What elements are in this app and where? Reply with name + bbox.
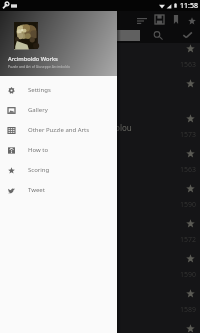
button[interactable]: Other Puzzle and Arts (0, 120, 117, 140)
staticText: Puzzle and Art of Giuseppe Arcimboldo (8, 64, 70, 69)
button[interactable]: The Jurist (0, 323, 200, 333)
staticText: 1563 (180, 165, 197, 175)
staticText: 1572 (180, 235, 197, 245)
button[interactable]: Spring (0, 43, 200, 78)
staticText: Arcimboldo Works (8, 55, 58, 63)
button[interactable]: Winter (0, 148, 200, 183)
button[interactable]: Tweet (0, 180, 117, 200)
button[interactable]: Gallery (0, 100, 117, 120)
button[interactable]: Search (149, 27, 167, 43)
button[interactable]: The Librarian (0, 218, 200, 253)
button[interactable]: Flora (0, 288, 200, 323)
staticText: 1590 (180, 200, 197, 210)
button[interactable]: Done (178, 27, 197, 43)
staticText: Spring (9, 52, 34, 63)
staticText: 11:58 (180, 1, 198, 11)
staticText: Summer (9, 87, 42, 98)
button[interactable]: How to (0, 140, 117, 160)
button[interactable]: Favorite (184, 15, 200, 26)
button[interactable]: Settings (0, 80, 117, 100)
button[interactable]: Search field (105, 30, 140, 41)
button[interactable]: Bookmark (168, 13, 183, 26)
staticText: Four Seasons in One Head (9, 192, 108, 203)
button[interactable]: Four Seasons in One Head (0, 183, 200, 218)
button[interactable]: Summer (0, 78, 200, 113)
staticText: Settings (28, 86, 51, 94)
staticText: 1563 (180, 60, 197, 70)
button[interactable]: Scoring (0, 160, 117, 180)
staticText: 1589 (180, 305, 197, 315)
staticText: How to (28, 146, 49, 154)
staticText: Tweet (28, 186, 45, 194)
button[interactable]: Sort (132, 15, 152, 26)
staticText: 1590 (180, 270, 197, 280)
button[interactable]: Save (151, 13, 168, 26)
button[interactable]: Vertumnus (0, 253, 200, 288)
staticText: Scoring (28, 166, 50, 174)
staticText: Gallery (28, 106, 48, 114)
staticText: 1573 (180, 130, 197, 140)
button[interactable]: Four Seasons in One Head Colou (0, 113, 200, 148)
staticText: Four Seasons in One Head Colou (9, 122, 132, 133)
staticText: Other Puzzle and Arts (28, 126, 90, 134)
